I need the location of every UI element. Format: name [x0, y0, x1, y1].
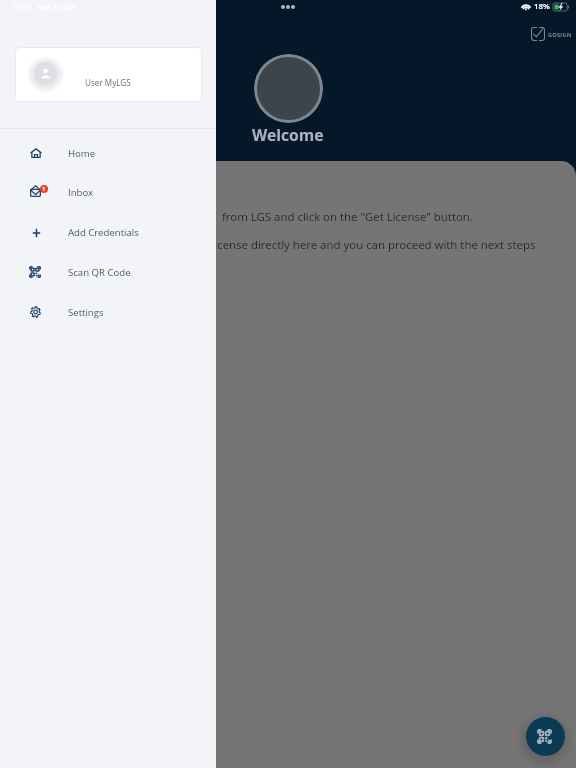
staticText: Inbox	[68, 186, 94, 199]
staticText: Scan QR Code	[68, 266, 131, 279]
button[interactable]	[15, 47, 202, 102]
button[interactable]	[0, 292, 216, 332]
staticText: Settings	[68, 306, 104, 319]
button[interactable]	[0, 173, 216, 213]
staticText: 12:57 Tue 31 Oct	[12, 2, 76, 12]
button[interactable]	[0, 133, 216, 173]
staticText: Home	[68, 147, 96, 160]
staticText: User MyLGS	[85, 77, 131, 88]
button[interactable]	[0, 252, 216, 292]
button[interactable]: GoSign	[529, 25, 571, 43]
staticText: Welcome	[252, 124, 324, 145]
staticText: Add Credentials	[68, 226, 139, 239]
staticText: 1	[42, 185, 46, 193]
staticText: GOSIGN	[548, 31, 572, 39]
staticText: 18%	[534, 1, 550, 12]
staticText: Please request your license from LGS and…	[71, 209, 473, 225]
button[interactable]: Scan QR code	[526, 717, 565, 756]
staticText: You will receive the license directly he…	[107, 237, 536, 253]
button[interactable]	[0, 213, 216, 253]
